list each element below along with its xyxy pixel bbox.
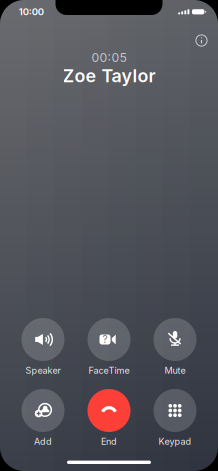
staticText: 10:00 [19,6,44,18]
staticText: FaceTime [88,365,129,376]
staticText: 00:05 [91,50,126,65]
staticText: ? [102,333,107,345]
button[interactable]: Keypad [142,388,208,448]
staticText: Add [34,436,52,447]
staticText: Keypad [158,436,191,447]
button[interactable]: Speaker [10,317,76,377]
button[interactable]: Call info [189,28,214,53]
button[interactable]: Mute [142,317,208,377]
staticText: Speaker [25,365,60,376]
button[interactable]: Add [10,388,76,448]
staticText: End [101,436,117,447]
staticText: Zoe Taylor [62,65,155,86]
button[interactable]: End [76,388,142,448]
button[interactable]: ? [76,317,142,377]
staticText: Mute [164,365,185,376]
